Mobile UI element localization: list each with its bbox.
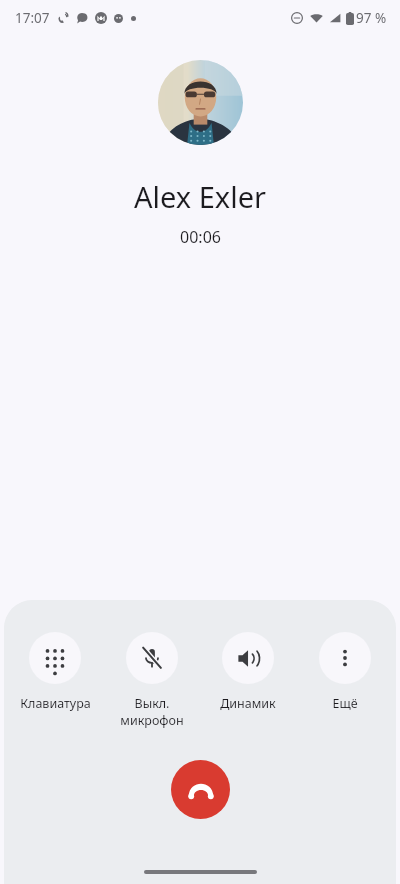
staticText: Динамик (220, 695, 276, 712)
staticText: 00:06 (180, 226, 221, 248)
staticText: Ещё (332, 695, 358, 712)
button[interactable]: Dialpad (9, 632, 101, 712)
staticText: Выкл. микрофон (120, 695, 184, 729)
staticText: 97 % (356, 9, 387, 27)
button[interactable]: Speaker (202, 632, 294, 712)
button[interactable]: Mute microphone (106, 632, 198, 729)
button[interactable]: More options (299, 632, 391, 712)
staticText: Клавиатура (20, 695, 91, 712)
staticText: Alex Exler (134, 177, 266, 216)
staticText: 17:07 (15, 9, 50, 27)
button[interactable]: End call (171, 760, 230, 819)
